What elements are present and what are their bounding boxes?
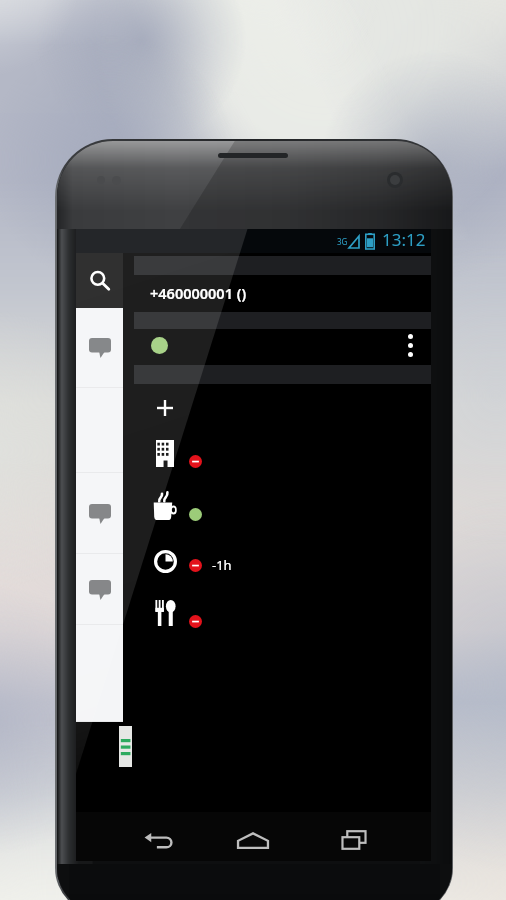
button[interactable] (123, 435, 420, 485)
staticText: -1h (212, 556, 232, 574)
button[interactable] (123, 485, 420, 535)
button[interactable] (123, 393, 420, 443)
staticText: +460000001 () (150, 283, 247, 303)
button[interactable]: Recent apps (332, 818, 376, 862)
staticText: 3G (337, 236, 348, 247)
staticText: 13:12 (382, 228, 426, 251)
button[interactable]: Conversation (76, 308, 123, 388)
button[interactable]: Home (231, 818, 275, 862)
button[interactable] (123, 595, 420, 645)
button[interactable]: Search (76, 253, 123, 308)
button[interactable]: Scroll (119, 726, 132, 767)
button[interactable]: -1h (123, 545, 420, 595)
button[interactable]: Back (136, 818, 180, 862)
button[interactable]: More options (398, 326, 422, 364)
button[interactable]: Conversation (76, 473, 123, 554)
button[interactable]: Conversation (76, 554, 123, 625)
